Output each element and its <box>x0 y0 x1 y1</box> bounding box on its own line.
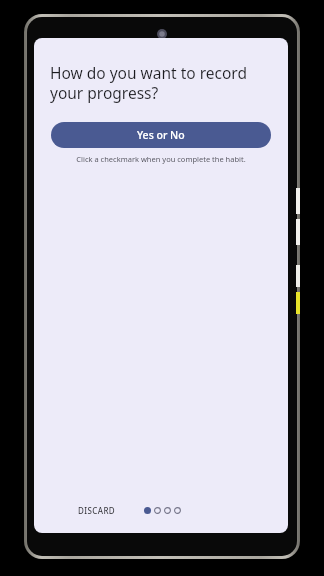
staticText: Click a checkmark when you complete the … <box>48 154 274 164</box>
button[interactable]: DISCARD <box>74 501 120 520</box>
staticText: Yes or No <box>137 128 185 142</box>
staticText: How do you want to record your progress? <box>50 62 266 104</box>
button[interactable]: Yes or No <box>51 122 271 148</box>
staticText: DISCARD <box>78 505 116 516</box>
